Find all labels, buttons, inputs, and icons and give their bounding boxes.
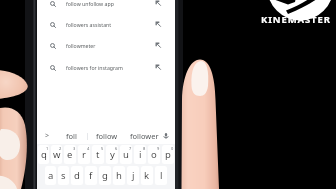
staticText: 7 <box>129 146 132 151</box>
button[interactable]: e <box>64 145 76 164</box>
button[interactable]: f <box>85 166 97 185</box>
staticText: KINEMASTER <box>261 13 331 26</box>
staticText: t <box>96 148 100 161</box>
other: Insert suggestion <box>155 21 161 27</box>
button[interactable]: g <box>99 166 111 185</box>
staticText: e <box>67 148 73 161</box>
button[interactable]: follow <box>96 131 118 141</box>
button[interactable]: u <box>120 145 132 164</box>
staticText: r <box>82 148 86 161</box>
staticText: d <box>74 169 80 182</box>
staticText: 2 <box>59 146 62 151</box>
button[interactable]: followers for instagram <box>37 58 175 76</box>
staticText: i <box>139 148 142 161</box>
staticText: f <box>89 169 93 182</box>
staticText: 1 <box>46 146 49 151</box>
button[interactable]: w <box>51 145 62 164</box>
button[interactable]: s <box>58 166 69 185</box>
button[interactable]: h <box>113 166 125 185</box>
button[interactable]: i <box>134 145 146 164</box>
button[interactable]: r <box>78 145 90 164</box>
button[interactable]: t <box>92 145 104 164</box>
staticText: l <box>160 169 163 182</box>
staticText: s <box>61 169 66 182</box>
staticText: u <box>123 148 129 161</box>
staticText: 9 <box>157 146 160 151</box>
button[interactable]: foll <box>66 131 77 141</box>
staticText: 3 <box>73 146 76 151</box>
staticText: 8 <box>143 146 146 151</box>
staticText: 0 <box>171 146 174 151</box>
staticText: 4 <box>87 146 90 151</box>
staticText: followmeter <box>66 42 96 49</box>
staticText: 6 <box>115 146 118 151</box>
staticText: j <box>132 169 135 182</box>
staticText: k <box>144 169 150 182</box>
button[interactable]: y <box>106 145 118 164</box>
button[interactable]: l <box>155 166 167 185</box>
button[interactable]: p <box>162 145 174 164</box>
staticText: h <box>116 169 122 182</box>
staticText: a <box>48 169 54 182</box>
other: Insert suggestion <box>155 42 161 48</box>
other: Voice input <box>162 132 170 140</box>
staticText: p <box>165 148 171 161</box>
button[interactable]: d <box>71 166 83 185</box>
button[interactable]: k <box>141 166 153 185</box>
button[interactable]: followers assistant <box>37 15 175 33</box>
button[interactable]: a <box>45 166 56 185</box>
staticText: o <box>151 148 157 161</box>
staticText: followers assistant <box>66 21 112 28</box>
staticText: 5 <box>101 146 104 151</box>
other: Insert suggestion <box>155 0 161 6</box>
staticText: w <box>53 148 61 161</box>
button[interactable]: followmeter <box>37 36 175 54</box>
button[interactable]: follower <box>130 131 159 141</box>
button[interactable]: follow unfollow app <box>37 0 175 12</box>
staticText: follow unfollow app <box>66 0 114 7</box>
button[interactable]: o <box>148 145 160 164</box>
button[interactable]: j <box>127 166 139 185</box>
staticText: q <box>41 148 47 161</box>
button[interactable]: q <box>38 145 49 164</box>
staticText: > <box>45 131 50 141</box>
staticText: y <box>110 148 115 161</box>
other: Insert suggestion <box>155 64 161 70</box>
staticText: g <box>102 169 108 182</box>
staticText: followers for instagram <box>66 64 123 71</box>
